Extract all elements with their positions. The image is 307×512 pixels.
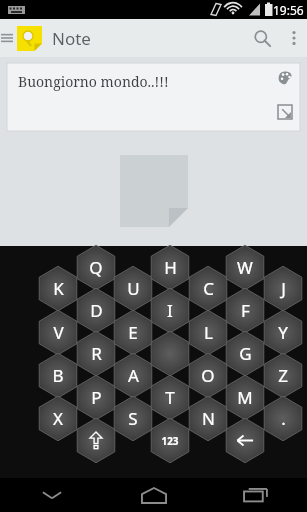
staticText: Y: [278, 321, 288, 344]
button[interactable]: K: [38, 265, 78, 312]
staticText: A: [128, 364, 139, 387]
button[interactable]: U: [113, 265, 153, 312]
staticText: V: [53, 321, 64, 344]
staticText: Buongiorno mondo..!!!: [18, 72, 169, 91]
button[interactable]: More options: [281, 19, 307, 57]
staticText: K: [53, 277, 64, 300]
button[interactable]: Resize note: [270, 97, 300, 127]
staticText: X: [53, 407, 63, 430]
staticText: H: [164, 256, 177, 279]
staticText: Z: [278, 364, 288, 387]
button[interactable]: W: [225, 244, 265, 291]
staticText: T: [165, 386, 175, 409]
staticText: W: [237, 256, 253, 279]
button[interactable]: P: [76, 374, 116, 421]
staticText: C: [203, 277, 214, 300]
button[interactable]: [76, 417, 116, 464]
staticText: L: [204, 321, 213, 344]
button[interactable]: X: [38, 395, 78, 442]
button[interactable]: Note app icon: [17, 26, 42, 51]
button[interactable]: Home: [103, 478, 205, 512]
button[interactable]: D: [76, 287, 116, 334]
staticText: R: [91, 342, 102, 365]
button[interactable]: Back: [0, 478, 103, 512]
button[interactable]: [225, 417, 265, 464]
button[interactable]: G: [225, 330, 265, 377]
staticText: O: [201, 364, 215, 387]
staticText: .: [281, 407, 286, 430]
button[interactable]: C: [188, 265, 228, 312]
button[interactable]: R: [76, 330, 116, 377]
staticText: Q: [89, 256, 103, 279]
button[interactable]: F: [225, 287, 265, 334]
button[interactable]: Search: [243, 19, 281, 57]
staticText: U: [127, 277, 140, 300]
staticText: N: [202, 407, 215, 430]
button[interactable]: M: [225, 374, 265, 421]
staticText: B: [52, 364, 64, 387]
button[interactable]: T: [150, 374, 190, 421]
staticText: M: [237, 386, 253, 409]
button[interactable]: 123: [150, 417, 190, 464]
button[interactable]: V: [38, 309, 78, 356]
button[interactable]: J: [263, 265, 303, 312]
staticText: J: [281, 277, 286, 300]
button[interactable]: N: [188, 395, 228, 442]
button[interactable]: Y: [263, 309, 303, 356]
staticText: Note: [52, 27, 91, 50]
staticText: I: [167, 299, 173, 322]
staticText: 19:56: [273, 2, 304, 18]
staticText: Scrivi una nota: [92, 241, 215, 246]
button[interactable]: Change color: [270, 63, 300, 93]
button[interactable]: S: [113, 395, 153, 442]
button[interactable]: Space: [150, 330, 190, 377]
staticText: D: [90, 299, 103, 322]
staticText: P: [91, 386, 102, 409]
button[interactable]: O: [188, 352, 228, 399]
button[interactable]: A: [113, 352, 153, 399]
button[interactable]: L: [188, 309, 228, 356]
staticText: S: [128, 407, 138, 430]
button[interactable]: Open navigation drawer: [0, 19, 14, 57]
button[interactable]: H: [150, 244, 190, 291]
button[interactable]: E: [113, 309, 153, 356]
button[interactable]: Recent apps: [205, 478, 307, 512]
button[interactable]: Buongiorno mondo..!!!: [7, 63, 300, 131]
staticText: 123: [161, 434, 179, 448]
staticText: F: [241, 299, 250, 322]
button[interactable]: Q: [76, 244, 116, 291]
button[interactable]: I: [150, 287, 190, 334]
button[interactable]: .: [263, 395, 303, 442]
button[interactable]: B: [38, 352, 78, 399]
staticText: G: [239, 342, 252, 365]
button[interactable]: Z: [263, 352, 303, 399]
staticText: E: [128, 321, 138, 344]
